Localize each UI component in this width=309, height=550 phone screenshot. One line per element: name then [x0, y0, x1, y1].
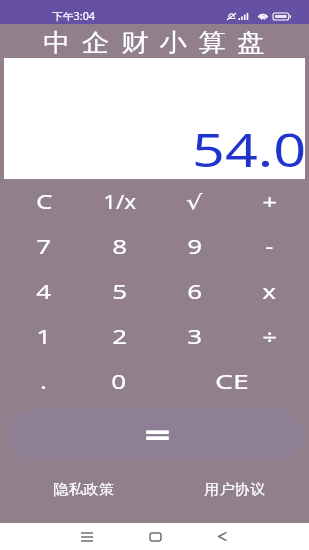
staticText: 54.0: [192, 118, 307, 181]
button[interactable]: +: [232, 179, 307, 224]
staticText: 6: [187, 278, 203, 305]
button[interactable]: 8: [82, 224, 157, 269]
staticText: 用户协议: [204, 481, 266, 498]
button[interactable]: x: [232, 269, 307, 314]
staticText: -: [265, 233, 274, 260]
button[interactable]: 隐私政策: [44, 477, 124, 501]
button[interactable]: 1/x: [82, 179, 157, 224]
staticText: C: [36, 188, 53, 215]
button[interactable]: 5: [82, 269, 157, 314]
staticText: x: [262, 278, 277, 305]
staticText: =: [144, 412, 171, 457]
staticText: 隐私政策: [53, 481, 115, 498]
staticText: 7: [36, 233, 52, 260]
button[interactable]: 4: [6, 269, 82, 314]
staticText: √: [186, 190, 203, 213]
staticText: 2: [112, 323, 128, 350]
button[interactable]: .: [6, 359, 81, 404]
button[interactable]: =: [8, 409, 304, 460]
staticText: CE: [215, 368, 249, 395]
button[interactable]: -: [232, 224, 307, 269]
staticText: 1: [36, 323, 52, 350]
button[interactable]: Recent apps: [67, 523, 107, 550]
staticText: 9: [187, 233, 203, 260]
staticText: 中企财小算盘: [43, 28, 276, 59]
button[interactable]: 6: [157, 269, 232, 314]
button[interactable]: CE: [156, 359, 307, 404]
staticText: .: [40, 368, 48, 395]
button[interactable]: 2: [82, 314, 157, 359]
staticText: +: [262, 188, 278, 215]
staticText: 0: [111, 368, 127, 395]
button[interactable]: Back: [202, 523, 242, 550]
staticText: 3: [187, 323, 203, 350]
button[interactable]: 7: [6, 224, 82, 269]
staticText: 下午3:04: [52, 9, 95, 23]
staticText: 1/x: [103, 188, 137, 215]
staticText: 8: [112, 233, 128, 260]
button[interactable]: 3: [157, 314, 232, 359]
staticText: 5: [112, 278, 128, 305]
button[interactable]: 1: [6, 314, 82, 359]
button[interactable]: 9: [157, 224, 232, 269]
staticText: ÷: [262, 323, 278, 350]
button[interactable]: √: [157, 179, 232, 224]
button[interactable]: 用户协议: [195, 477, 275, 501]
staticText: 4: [36, 278, 52, 305]
button[interactable]: Home: [135, 523, 175, 550]
button[interactable]: C: [6, 179, 82, 224]
button[interactable]: 0: [81, 359, 156, 404]
button[interactable]: ÷: [232, 314, 307, 359]
